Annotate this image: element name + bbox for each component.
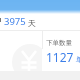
button[interactable]: 3975 bbox=[4, 15, 36, 28]
button[interactable]: 下单数量 bbox=[46, 39, 80, 65]
staticText: 天 bbox=[28, 18, 36, 28]
staticText: 3975 bbox=[4, 15, 26, 28]
staticText: 单 bbox=[74, 55, 80, 65]
button[interactable] bbox=[0, 31, 42, 71]
staticText: 下单数量 bbox=[46, 39, 72, 47]
staticText: 1127 bbox=[46, 49, 74, 65]
